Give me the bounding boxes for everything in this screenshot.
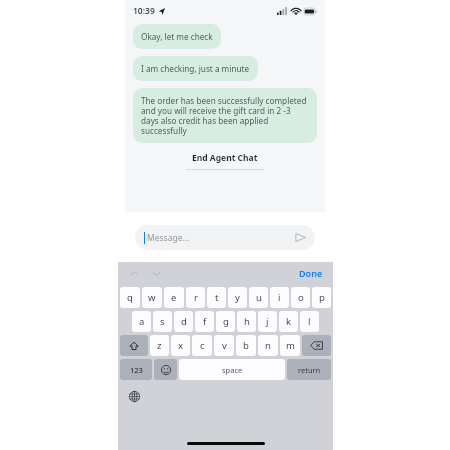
button[interactable]: space — [179, 359, 285, 380]
button[interactable]: Previous field — [126, 265, 142, 281]
button[interactable]: o — [291, 287, 310, 308]
staticText: g — [223, 315, 229, 328]
staticText: e — [171, 291, 177, 304]
button[interactable]: f — [195, 311, 214, 332]
staticText: I am checking, just a minute — [141, 63, 250, 74]
staticText: s — [160, 315, 165, 328]
button[interactable]: Backspace — [302, 335, 331, 356]
button[interactable]: h — [237, 311, 256, 332]
staticText: i — [278, 291, 281, 304]
button[interactable]: m — [280, 335, 300, 356]
staticText: h — [244, 315, 250, 328]
button[interactable]: Change keyboard — [126, 388, 142, 404]
staticText: c — [200, 339, 205, 352]
button[interactable]: b — [236, 335, 256, 356]
staticText: 10:39 — [133, 5, 155, 17]
button[interactable]: q — [120, 287, 140, 308]
button[interactable]: The order has been successfully complete… — [133, 88, 317, 143]
button[interactable]: s — [153, 311, 172, 332]
staticText: p — [319, 291, 325, 304]
staticText: k — [286, 315, 292, 328]
button[interactable]: l — [300, 311, 319, 332]
staticText: y — [235, 291, 240, 304]
staticText: Message... — [147, 232, 190, 244]
button[interactable]: 123 — [120, 359, 152, 380]
staticText: f — [203, 315, 207, 328]
staticText: m — [286, 339, 295, 352]
staticText: n — [265, 339, 271, 352]
staticText: Okay, let me check — [141, 31, 213, 42]
button[interactable]: p — [312, 287, 331, 308]
button[interactable]: t — [207, 287, 226, 308]
staticText: j — [266, 315, 269, 328]
other: Send — [295, 232, 306, 243]
staticText: t — [215, 291, 219, 304]
staticText: v — [222, 339, 227, 352]
button[interactable]: v — [214, 335, 234, 356]
button[interactable]: u — [249, 287, 268, 308]
staticText: r — [194, 291, 198, 304]
button[interactable]: w — [142, 287, 162, 308]
button[interactable]: y — [228, 287, 247, 308]
staticText: b — [243, 339, 249, 352]
button[interactable]: Done — [297, 265, 325, 281]
button[interactable]: a — [132, 311, 151, 332]
staticText: 123 — [130, 365, 143, 375]
staticText: q — [127, 291, 133, 304]
button[interactable]: d — [174, 311, 193, 332]
staticText: z — [157, 339, 162, 352]
button[interactable]: Next field — [148, 265, 164, 281]
button[interactable]: e — [164, 287, 184, 308]
button[interactable]: n — [258, 335, 278, 356]
staticText: The order has been successfully complete… — [141, 95, 309, 136]
button[interactable]: Message... — [135, 225, 315, 250]
button[interactable]: Shift — [120, 335, 148, 356]
button[interactable]: c — [192, 335, 212, 356]
button[interactable]: k — [279, 311, 298, 332]
staticText: w — [148, 291, 156, 304]
button[interactable]: End Agent Chat — [133, 152, 317, 170]
button[interactable]: z — [150, 335, 169, 356]
staticText: a — [139, 315, 145, 328]
staticText: d — [181, 315, 187, 328]
button[interactable]: i — [270, 287, 289, 308]
button[interactable]: I am checking, just a minute — [133, 56, 258, 81]
button[interactable]: g — [216, 311, 235, 332]
staticText: End Agent Chat — [192, 152, 258, 164]
button[interactable]: Emoji — [154, 359, 177, 380]
staticText: l — [308, 315, 311, 328]
staticText: u — [256, 291, 262, 304]
button[interactable]: r — [186, 287, 205, 308]
button[interactable]: x — [171, 335, 190, 356]
staticText: return — [298, 365, 321, 375]
staticText: x — [178, 339, 184, 352]
staticText: Done — [299, 267, 323, 279]
staticText: space — [222, 365, 243, 375]
button[interactable]: return — [287, 359, 331, 380]
button[interactable]: j — [258, 311, 277, 332]
button[interactable]: Okay, let me check — [133, 24, 221, 49]
staticText: o — [298, 291, 304, 304]
